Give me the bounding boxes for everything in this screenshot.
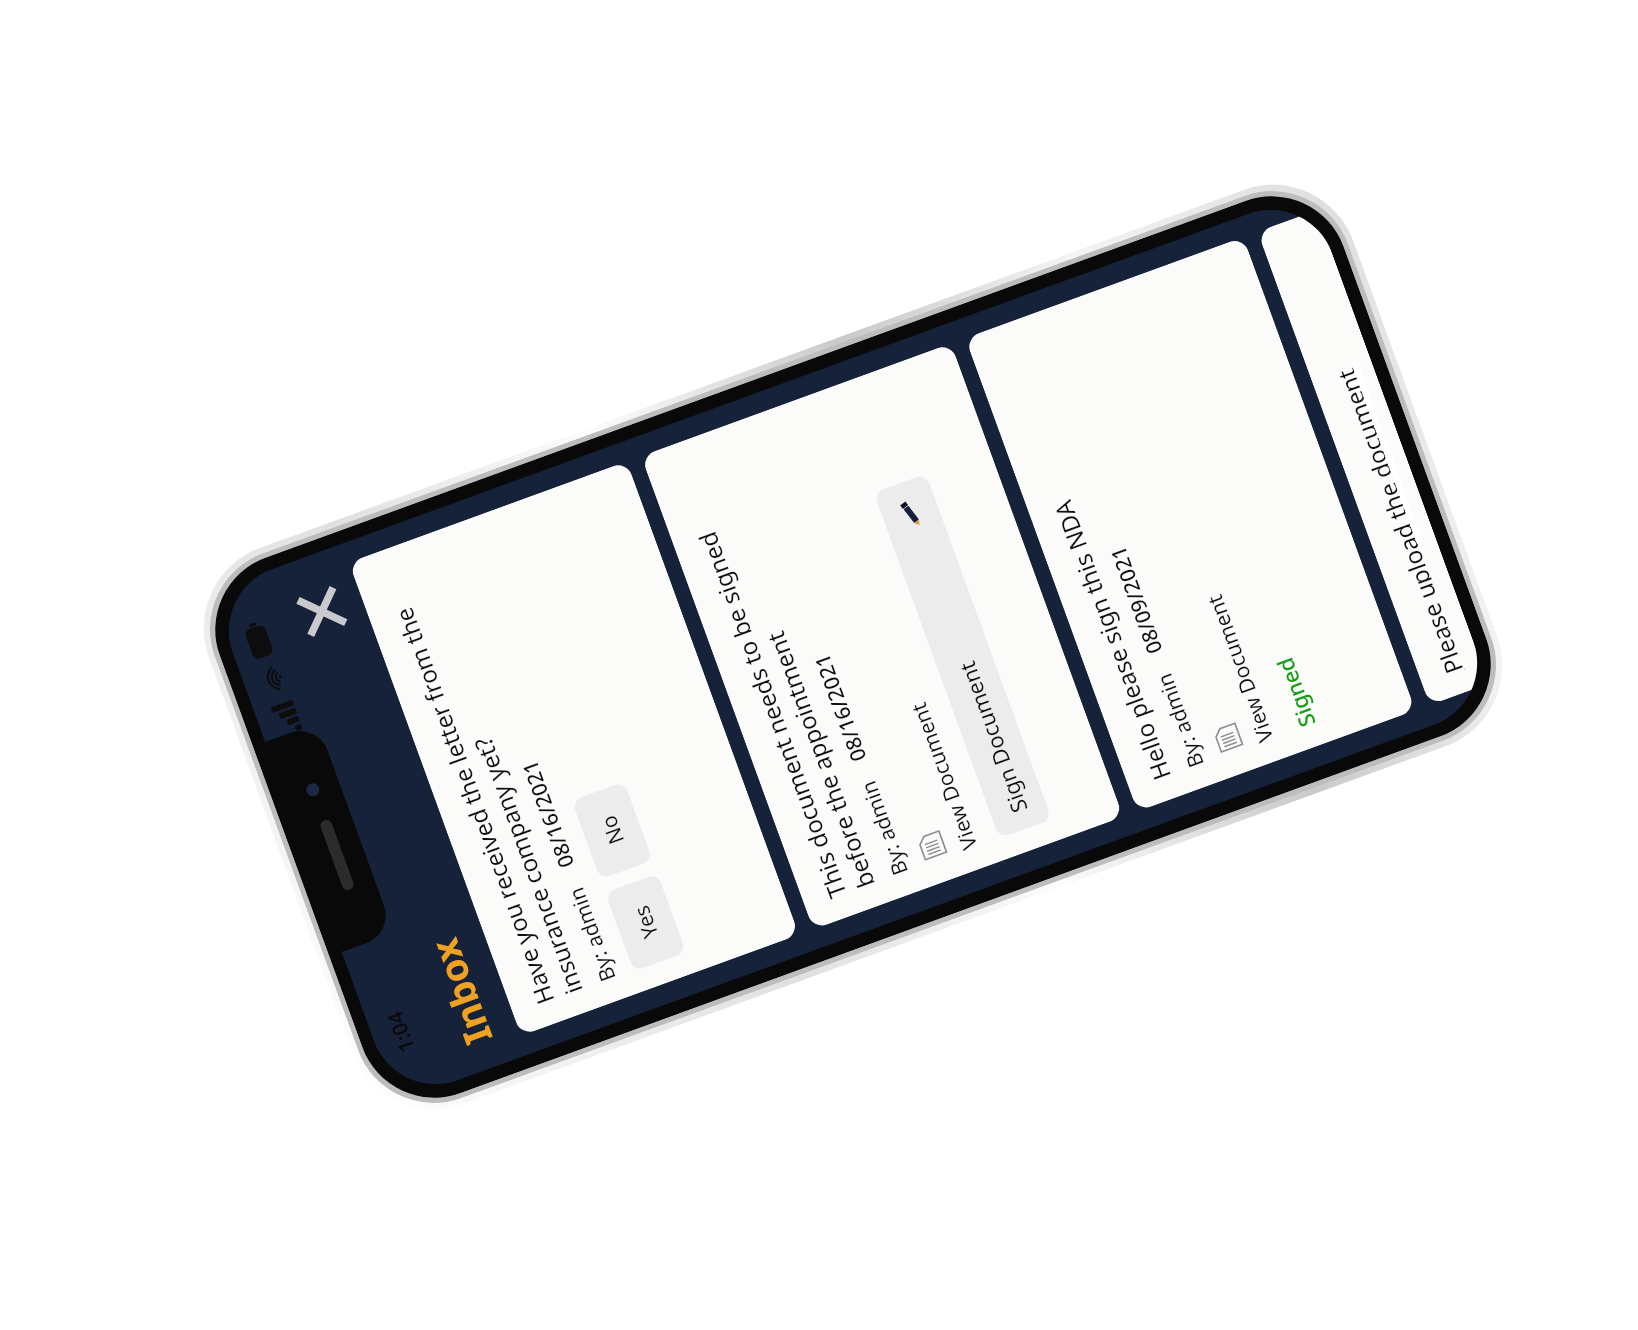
button[interactable]: Yes <box>605 873 686 972</box>
button[interactable]: Have you received the letter from the in… <box>349 461 799 1036</box>
button[interactable]: View Document <box>1200 591 1280 746</box>
staticText: 08/09/2021 <box>1103 542 1169 658</box>
button[interactable]: No <box>571 781 653 879</box>
staticText: Inbox <box>417 931 503 1052</box>
staticText: 08/16/2021 <box>807 649 873 765</box>
staticText: 1:04 <box>380 1007 422 1057</box>
staticText: Yes <box>627 901 665 942</box>
button[interactable]: Please upload the document <box>1257 210 1489 705</box>
button[interactable]: Close <box>285 574 359 649</box>
staticText: By: admin <box>854 776 915 879</box>
staticText: Sign Document <box>951 657 1034 817</box>
staticText: By: admin <box>561 883 622 985</box>
button[interactable]: View Document <box>904 698 984 854</box>
staticText: 08/16/2021 <box>515 756 581 872</box>
staticText: Hello please sign this NDA <box>1046 495 1178 785</box>
staticText: Have you received the letter from the in… <box>373 555 590 1009</box>
staticText: No <box>594 811 631 848</box>
button[interactable]: This document needs to be signed before … <box>641 343 1123 930</box>
staticText: This document needs to be signed before … <box>665 449 882 903</box>
button[interactable]: Hello please sign this NDA <box>965 237 1416 812</box>
staticText: By: admin <box>1150 668 1211 771</box>
button[interactable]: Sign Document <box>873 473 1052 838</box>
staticText: Please upload the document <box>1329 366 1464 678</box>
staticText: Signed <box>1269 653 1322 731</box>
